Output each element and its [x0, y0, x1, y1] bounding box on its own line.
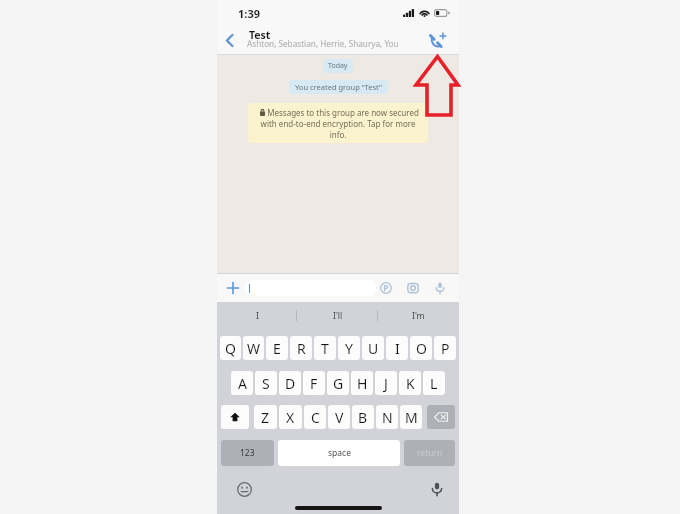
- staticText: T: [321, 339, 329, 358]
- button[interactable]: Dictation: [428, 480, 446, 498]
- staticText: Messages to this group are now secured w…: [248, 107, 428, 140]
- staticText: B: [358, 408, 368, 427]
- staticText: I'll: [333, 310, 343, 322]
- button[interactable]: Emoji keyboard: [235, 480, 253, 498]
- button[interactable]: S: [255, 371, 277, 395]
- button[interactable]: [244, 280, 376, 296]
- button[interactable]: R: [290, 336, 312, 360]
- button[interactable]: L: [423, 371, 445, 395]
- button[interactable]: Camera: [404, 279, 422, 297]
- button[interactable]: Back: [219, 26, 239, 55]
- button[interactable]: I: [386, 336, 408, 360]
- button[interactable]: A: [231, 371, 253, 395]
- button[interactable]: U: [362, 336, 384, 360]
- button[interactable]: D: [279, 371, 301, 395]
- staticText: P: [441, 339, 450, 358]
- staticText: Q: [225, 339, 236, 358]
- staticText: M: [405, 408, 418, 427]
- button[interactable]: I: [217, 302, 297, 329]
- button[interactable]: C: [304, 405, 326, 429]
- staticText: 1:39: [238, 6, 260, 21]
- button[interactable]: Y: [338, 336, 360, 360]
- staticText: X: [286, 408, 295, 427]
- button[interactable]: F: [303, 371, 325, 395]
- staticText: return: [417, 447, 443, 459]
- button[interactable]: M: [400, 405, 422, 429]
- staticText: I'm: [412, 310, 425, 322]
- button[interactable]: Z: [254, 405, 277, 429]
- staticText: space: [328, 447, 351, 459]
- button[interactable]: B: [352, 405, 374, 429]
- staticText: L: [430, 374, 438, 393]
- staticText: O: [416, 339, 427, 358]
- staticText: Z: [261, 408, 270, 427]
- staticText: I: [256, 310, 259, 322]
- button[interactable]: I'll: [297, 302, 378, 329]
- button[interactable]: P: [434, 336, 456, 360]
- staticText: A: [238, 374, 247, 393]
- staticText: Today: [328, 61, 348, 71]
- staticText: J: [384, 374, 388, 393]
- staticText: R: [297, 339, 306, 358]
- staticText: You created group “Test”: [295, 82, 382, 92]
- button[interactable]: Q: [220, 336, 241, 360]
- staticText: H: [357, 374, 368, 393]
- button[interactable]: Voice message: [431, 279, 449, 297]
- button[interactable]: W: [243, 336, 264, 360]
- button[interactable]: I'm: [378, 302, 459, 329]
- button[interactable]: Stickers: [377, 279, 395, 297]
- staticText: F: [310, 374, 318, 393]
- button[interactable]: space: [278, 440, 400, 466]
- staticText: N: [382, 408, 393, 427]
- button[interactable]: O: [410, 336, 432, 360]
- button[interactable]: Backspace: [427, 405, 455, 429]
- button[interactable]: X: [279, 405, 302, 429]
- button[interactable]: T: [314, 336, 336, 360]
- staticText: Test: [249, 28, 271, 42]
- staticText: U: [368, 339, 379, 358]
- staticText: D: [285, 374, 296, 393]
- staticText: G: [333, 374, 344, 393]
- button[interactable]: K: [399, 371, 421, 395]
- staticText: K: [406, 374, 415, 393]
- button[interactable]: Shift: [221, 405, 249, 429]
- staticText: V: [335, 408, 344, 427]
- button[interactable]: V: [328, 405, 350, 429]
- button[interactable]: E: [266, 336, 288, 360]
- staticText: 123: [240, 447, 255, 459]
- button[interactable]: Attach: [224, 279, 242, 297]
- button[interactable]: 123: [221, 440, 274, 466]
- button[interactable]: return: [404, 440, 455, 466]
- staticText: S: [262, 374, 270, 393]
- button[interactable]: G: [327, 371, 349, 395]
- button[interactable]: Add participant to call: [427, 30, 448, 51]
- button[interactable]: J: [375, 371, 397, 395]
- button[interactable]: H: [351, 371, 373, 395]
- button[interactable]: N: [376, 405, 398, 429]
- staticText: Ashton, Sebastian, Herrie, Shaurya, You: [247, 38, 399, 49]
- staticText: C: [311, 408, 320, 427]
- staticText: E: [273, 339, 281, 358]
- staticText: Y: [345, 339, 353, 358]
- staticText: I: [395, 339, 400, 358]
- staticText: W: [247, 339, 261, 358]
